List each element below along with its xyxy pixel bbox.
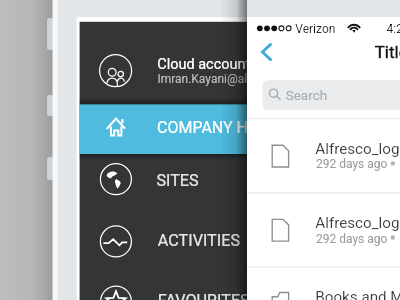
button[interactable]: Company Home xyxy=(80,104,247,154)
button[interactable]: Search xyxy=(262,80,400,110)
button[interactable]: Alfresco_logo_document.pdf xyxy=(247,118,400,192)
button[interactable]: Alfresco_logo_document.pdf xyxy=(247,192,400,266)
button[interactable]: Cloud account xyxy=(80,40,247,100)
button[interactable]: Sites xyxy=(80,154,247,214)
button[interactable]: Favourites xyxy=(80,274,247,300)
button[interactable]: Back xyxy=(252,38,282,66)
button[interactable]: Books and Movies xyxy=(247,266,400,300)
button[interactable]: Activities xyxy=(80,214,247,274)
